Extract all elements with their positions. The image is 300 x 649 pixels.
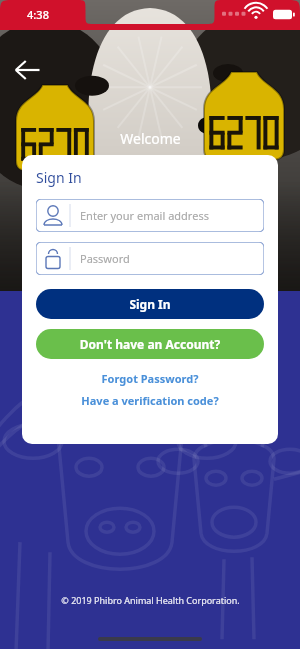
staticText: 4:38 xyxy=(27,7,49,22)
staticText: Don't have an Account? xyxy=(36,336,264,352)
button[interactable]: Enter your email address xyxy=(36,199,264,232)
staticText: Password xyxy=(80,251,130,266)
button[interactable]: Back xyxy=(10,52,46,88)
button[interactable]: Forgot Password? xyxy=(36,371,264,386)
button[interactable]: Don't have an Account? xyxy=(36,329,264,359)
staticText: Sign In xyxy=(36,296,264,312)
button[interactable]: Sign In xyxy=(36,289,264,319)
button[interactable]: Have a verification code? xyxy=(36,393,264,408)
button[interactable]: Password xyxy=(36,242,264,275)
staticText: Enter your email address xyxy=(80,208,209,223)
staticText: Welcome xyxy=(120,129,181,148)
staticText: © 2019 Phibro Animal Health Corporation. xyxy=(61,594,240,606)
staticText: Sign In xyxy=(36,168,264,187)
